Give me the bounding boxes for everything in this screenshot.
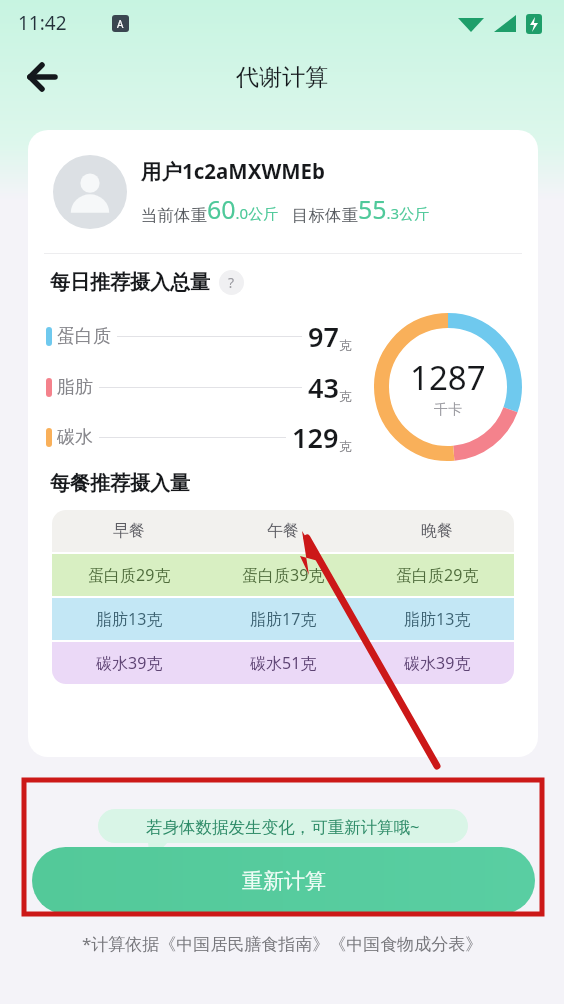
staticText: 当前体重 (141, 205, 207, 226)
staticText: 碳水39克 (96, 652, 163, 674)
staticText: *计算依据《中国居民膳食指南》《中国食物成分表》 (82, 932, 483, 955)
staticText: 克 (339, 388, 352, 404)
button[interactable]: 重新计算 (32, 847, 535, 914)
staticText: 每日推荐摄入总量 (50, 270, 210, 295)
staticText: 重新计算 (242, 868, 326, 894)
staticText: 129 (292, 419, 339, 456)
staticText: 午餐 (267, 521, 299, 541)
staticText: 蛋白质29克 (88, 564, 171, 586)
button[interactable]: Back (18, 53, 66, 101)
staticText: 蛋白质 (57, 325, 111, 348)
staticText: 脂肪13克 (404, 608, 471, 630)
staticText: 碳水51克 (250, 652, 317, 674)
staticText: 脂肪 (57, 376, 93, 399)
staticText: 早餐 (113, 521, 145, 541)
staticText: A (117, 17, 124, 31)
staticText: 用户1c2aMXWMEb (141, 157, 325, 185)
staticText: 97 (308, 318, 339, 355)
staticText: 克 (339, 438, 352, 454)
staticText: 蛋白质39克 (242, 564, 325, 586)
staticText: 55.3公斤 (358, 192, 430, 226)
staticText: 目标体重 (292, 205, 358, 226)
staticText: 代谢计算 (236, 63, 328, 92)
staticText: 克 (339, 337, 352, 353)
staticText: 蛋白质29克 (396, 564, 479, 586)
staticText: 若身体数据发生变化，可重新计算哦~ (146, 815, 420, 838)
staticText: 11:42 (18, 10, 67, 36)
staticText: 晚餐 (421, 521, 453, 541)
button[interactable]: 帮助 (219, 270, 244, 295)
staticText: 60.0公斤 (207, 192, 279, 226)
staticText: 43 (308, 369, 339, 406)
staticText: 碳水39克 (404, 652, 471, 674)
staticText: 每餐推荐摄入量 (50, 471, 190, 496)
staticText: 脂肪17克 (250, 608, 317, 630)
staticText: 碳水 (57, 426, 93, 449)
staticText: 脂肪13克 (96, 608, 163, 630)
staticText: 1287 (410, 355, 486, 400)
staticText: ? (228, 273, 235, 292)
staticText: 千卡 (434, 401, 462, 419)
